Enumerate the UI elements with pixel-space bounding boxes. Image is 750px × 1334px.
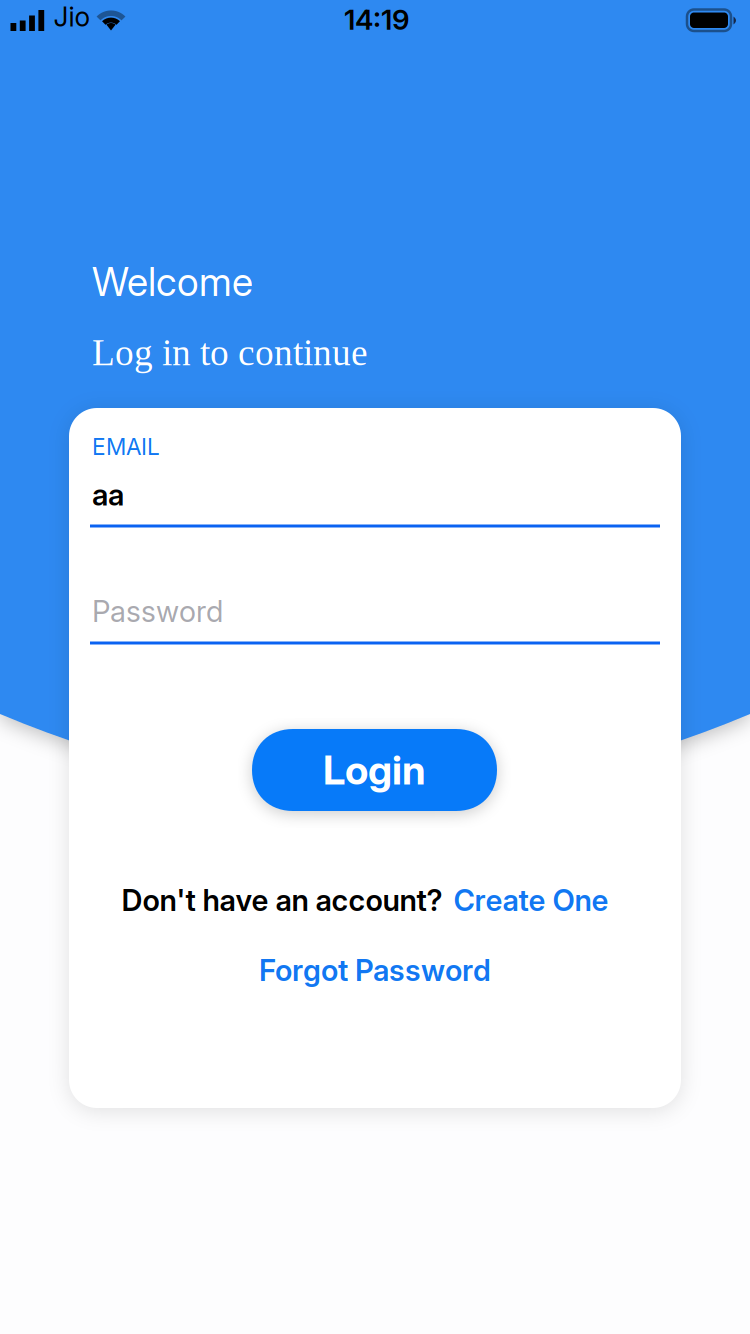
staticText: 14:19 [344,3,410,36]
staticText: Log in to continue [92,332,368,373]
staticText: Password [92,594,223,629]
staticText: Forgot Password [259,953,491,988]
staticText: Create One [453,883,608,918]
button[interactable]: Login [252,729,497,811]
button[interactable] [90,428,660,528]
staticText: Welcome [92,259,253,305]
button[interactable]: Forgot Password [259,953,491,988]
button[interactable]: Create One [453,883,608,918]
staticText: aa [92,477,124,512]
staticText: Don't have an account? [121,883,442,918]
staticText: EMAIL [92,433,160,460]
button[interactable] [90,589,660,645]
staticText: Jio [53,1,90,32]
staticText: Login [323,746,426,794]
